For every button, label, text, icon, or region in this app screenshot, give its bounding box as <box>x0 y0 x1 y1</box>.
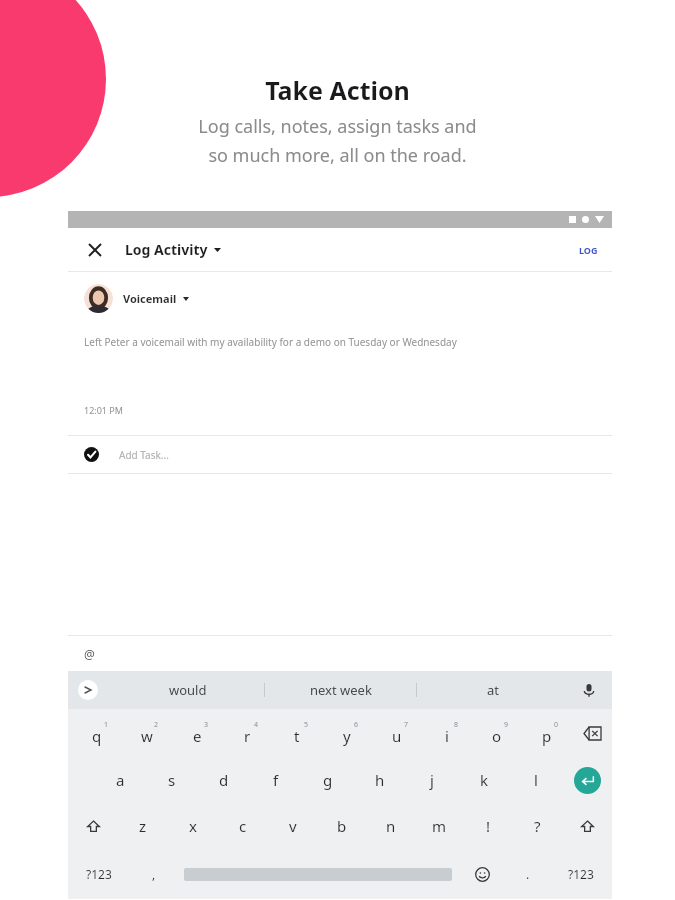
staticText: at <box>487 681 499 699</box>
staticText: a <box>116 770 125 790</box>
button[interactable]: at <box>417 671 568 709</box>
staticText: c <box>239 816 247 836</box>
button[interactable]: Add Task... <box>84 436 612 473</box>
button[interactable]: d <box>198 757 250 803</box>
button[interactable]: Voice input <box>580 681 598 699</box>
staticText: w <box>141 726 153 746</box>
staticText: 5 <box>304 720 309 730</box>
button[interactable]: q <box>72 709 122 757</box>
staticText: v <box>289 816 297 836</box>
staticText: q <box>92 726 102 746</box>
staticText: ?123 <box>86 866 112 882</box>
staticText: so much more, all on the road. <box>208 143 467 168</box>
staticText: Left Peter a voicemail with my availabil… <box>84 335 457 349</box>
button[interactable]: t <box>272 709 322 757</box>
staticText: h <box>375 770 385 790</box>
button[interactable]: e <box>172 709 222 757</box>
button[interactable]: j <box>406 757 458 803</box>
button[interactable]: r <box>222 709 272 757</box>
button[interactable]: Shift <box>562 803 612 849</box>
button[interactable]: v <box>268 803 317 849</box>
button[interactable]: next week <box>265 671 416 709</box>
staticText: ! <box>486 816 491 836</box>
button[interactable]: c <box>218 803 268 849</box>
staticText: 1 <box>104 720 109 730</box>
staticText: p <box>542 726 552 746</box>
button[interactable]: h <box>354 757 406 803</box>
button[interactable]: Mention <box>84 636 612 671</box>
button[interactable]: b <box>317 803 366 849</box>
button[interactable]: . <box>506 849 550 899</box>
staticText: 3 <box>204 720 209 730</box>
staticText: j <box>430 770 434 790</box>
button[interactable]: LOG <box>579 244 598 256</box>
staticText: b <box>337 816 347 836</box>
button[interactable]: would <box>112 671 264 709</box>
staticText: ? <box>534 816 541 836</box>
button[interactable]: k <box>458 757 510 803</box>
staticText: s <box>168 770 176 790</box>
button[interactable]: Backspace <box>572 709 612 757</box>
staticText: i <box>445 726 449 746</box>
staticText: , <box>152 866 156 882</box>
button[interactable]: p <box>522 709 572 757</box>
staticText: k <box>480 770 489 790</box>
staticText: 8 <box>454 720 459 730</box>
staticText: g <box>323 770 333 790</box>
button[interactable]: u <box>372 709 422 757</box>
button[interactable]: Enter <box>562 757 612 803</box>
staticText: next week <box>310 681 372 699</box>
staticText: y <box>343 726 351 746</box>
staticText: 12:01 PM <box>84 404 123 416</box>
staticText: . <box>526 866 530 882</box>
staticText: d <box>219 770 229 790</box>
staticText: z <box>139 816 147 836</box>
button[interactable]: ? <box>513 803 562 849</box>
button[interactable]: z <box>118 803 168 849</box>
staticText: e <box>193 726 202 746</box>
button[interactable]: ! <box>464 803 513 849</box>
button[interactable]: x <box>168 803 218 849</box>
button[interactable]: i <box>422 709 472 757</box>
staticText: m <box>432 816 447 836</box>
staticText: n <box>386 816 396 836</box>
staticText: 6 <box>354 720 359 730</box>
button[interactable]: Shift <box>68 803 118 849</box>
button[interactable]: , <box>130 849 178 899</box>
button[interactable]: o <box>472 709 522 757</box>
button[interactable]: ?123 <box>68 849 130 899</box>
button[interactable]: m <box>415 803 464 849</box>
button[interactable]: f <box>250 757 302 803</box>
button[interactable]: Emoji <box>458 849 506 899</box>
staticText: ?123 <box>568 866 594 882</box>
button[interactable]: y <box>322 709 372 757</box>
staticText: Add Task... <box>119 448 169 462</box>
staticText: 0 <box>554 720 559 730</box>
staticText: o <box>492 726 502 746</box>
button[interactable]: a <box>94 757 146 803</box>
button[interactable]: Space <box>178 849 458 899</box>
staticText: @ <box>84 646 95 662</box>
button[interactable]: Log Activity <box>125 240 221 259</box>
button[interactable]: Close <box>85 240 105 260</box>
staticText: 9 <box>504 720 509 730</box>
staticText: Log Activity <box>125 240 208 259</box>
button[interactable]: g <box>302 757 354 803</box>
button[interactable]: More suggestions <box>78 680 98 700</box>
button[interactable]: w <box>122 709 172 757</box>
button[interactable]: ?123 <box>550 849 612 899</box>
staticText: u <box>392 726 402 746</box>
staticText: t <box>294 726 300 746</box>
staticText: l <box>534 770 538 790</box>
staticText: Log calls, notes, assign tasks and <box>198 114 477 139</box>
staticText: Voicemail <box>123 291 177 306</box>
staticText: 4 <box>254 720 259 730</box>
button[interactable]: s <box>146 757 198 803</box>
staticText: 2 <box>154 720 159 730</box>
button[interactable]: n <box>366 803 415 849</box>
button[interactable]: Voicemail <box>84 284 612 313</box>
staticText: would <box>169 681 207 699</box>
staticText: LOG <box>579 244 598 256</box>
button[interactable]: l <box>510 757 562 803</box>
staticText: 7 <box>404 720 409 730</box>
